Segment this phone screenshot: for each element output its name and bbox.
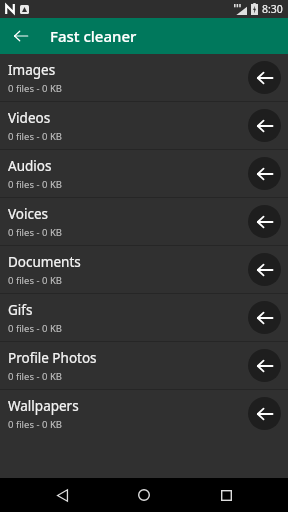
button[interactable]: Clean Audios — [248, 157, 281, 190]
staticText: Documents — [8, 253, 81, 271]
staticText: 0 files - 0 KB — [8, 418, 62, 431]
staticText: Fast cleaner — [50, 26, 137, 46]
staticText: 0 files - 0 KB — [8, 178, 62, 191]
button[interactable]: Home — [124, 478, 164, 512]
button[interactable]: Audios — [0, 150, 288, 197]
staticText: Videos — [8, 109, 51, 127]
button[interactable]: Gifs — [0, 294, 288, 341]
staticText: Profile Photos — [8, 349, 97, 367]
button[interactable]: Clean Wallpapers — [248, 397, 281, 430]
staticText: Images — [8, 61, 56, 79]
staticText: Wallpapers — [8, 397, 79, 415]
button[interactable]: Back — [6, 21, 36, 51]
button[interactable]: Images — [0, 54, 288, 101]
staticText: 0 files - 0 KB — [8, 226, 62, 239]
button[interactable]: Clean Gifs — [248, 301, 281, 334]
staticText: 0 files - 0 KB — [8, 322, 62, 335]
button[interactable]: Clean Profile Photos — [248, 349, 281, 382]
staticText: 8:30 — [262, 2, 283, 16]
button[interactable]: Profile Photos — [0, 342, 288, 389]
button[interactable]: Back — [42, 478, 82, 512]
button[interactable]: Clean Documents — [248, 253, 281, 286]
button[interactable]: Wallpapers — [0, 390, 288, 437]
staticText: Gifs — [8, 301, 33, 319]
button[interactable]: Documents — [0, 246, 288, 293]
button[interactable]: Clean Voices — [248, 205, 281, 238]
button[interactable]: Voices — [0, 198, 288, 245]
button[interactable]: Recent apps — [206, 478, 246, 512]
staticText: 0 files - 0 KB — [8, 82, 62, 95]
button[interactable]: Clean Videos — [248, 109, 281, 142]
button[interactable]: Videos — [0, 102, 288, 149]
staticText: 0 files - 0 KB — [8, 274, 62, 287]
staticText: Audios — [8, 157, 52, 175]
staticText: 0 files - 0 KB — [8, 370, 62, 383]
staticText: Voices — [8, 205, 49, 223]
staticText: 0 files - 0 KB — [8, 130, 62, 143]
button[interactable]: Clean Images — [248, 61, 281, 94]
